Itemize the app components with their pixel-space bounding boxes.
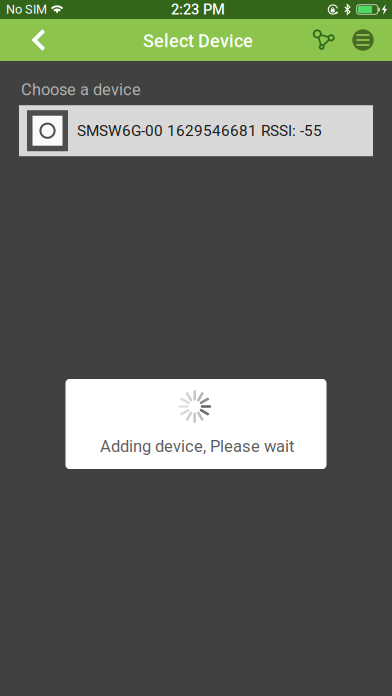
staticText: No SIM bbox=[6, 2, 47, 17]
staticText: 2:23 PM bbox=[171, 1, 225, 18]
button[interactable]: Back bbox=[17, 19, 61, 61]
staticText: Choose a device bbox=[21, 80, 141, 99]
button[interactable]: Menu bbox=[343, 19, 383, 61]
staticText: SMSW6G-00 1629546681 RSSI: -55 bbox=[77, 122, 322, 140]
staticText: Adding device, Please wait bbox=[100, 437, 294, 456]
button[interactable]: Network topology bbox=[303, 19, 343, 61]
staticText: Select Device bbox=[143, 30, 253, 52]
button[interactable]: SMSW6G-00 1629546681 RSSI: -55 bbox=[19, 105, 373, 156]
